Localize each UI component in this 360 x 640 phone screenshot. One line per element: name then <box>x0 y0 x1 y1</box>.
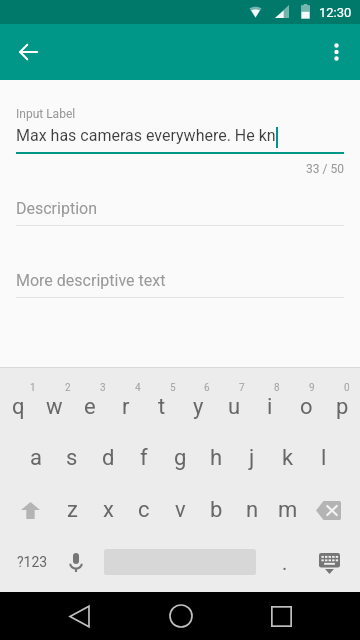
staticText: w <box>46 394 63 420</box>
staticText: 2 <box>65 382 71 394</box>
button[interactable]: o <box>288 385 324 429</box>
button[interactable]: y <box>180 385 216 429</box>
staticText: Description <box>16 199 97 218</box>
button[interactable]: s <box>54 436 90 480</box>
button[interactable]: Back <box>55 592 103 640</box>
button[interactable]: n <box>234 488 270 532</box>
button[interactable]: Hide keyboard <box>309 543 349 583</box>
staticText: 9 <box>309 382 315 394</box>
button[interactable]: x <box>90 488 126 532</box>
staticText: b <box>210 497 223 523</box>
staticText: d <box>102 445 115 471</box>
staticText: 6 <box>204 382 210 394</box>
staticText: l <box>321 445 327 471</box>
staticText: 4 <box>135 382 141 394</box>
staticText: t <box>158 394 166 420</box>
staticText: o <box>300 394 313 420</box>
staticText: m <box>278 497 298 523</box>
button[interactable]: p <box>324 385 360 429</box>
button[interactable]: Navigate up <box>4 28 52 76</box>
staticText: r <box>122 394 130 420</box>
staticText: 0 <box>344 382 350 394</box>
staticText: 12:30 <box>319 5 352 20</box>
button[interactable]: d <box>90 436 126 480</box>
staticText: v <box>175 497 186 523</box>
staticText: z <box>67 497 78 523</box>
button[interactable]: a <box>18 436 54 480</box>
button[interactable]: h <box>198 436 234 480</box>
staticText: q <box>12 394 25 420</box>
staticText: a <box>30 445 42 471</box>
staticText: 8 <box>274 382 280 394</box>
button[interactable]: i <box>252 385 288 429</box>
staticText: e <box>84 394 96 420</box>
staticText: Input Label <box>16 107 76 121</box>
staticText: x <box>103 497 114 523</box>
button[interactable]: k <box>270 436 306 480</box>
staticText: 5 <box>170 382 176 394</box>
button[interactable]: e <box>72 385 108 429</box>
button[interactable]: l <box>306 436 342 480</box>
staticText: p <box>336 394 349 420</box>
staticText: g <box>174 445 187 471</box>
button[interactable]: Voice input <box>58 542 94 582</box>
button[interactable]: Home <box>157 592 205 640</box>
button[interactable]: ?123 <box>8 542 56 582</box>
staticText: 33 / 50 <box>0 162 344 176</box>
button[interactable]: c <box>126 488 162 532</box>
staticText: 7 <box>239 382 245 394</box>
button[interactable]: m <box>270 488 306 532</box>
button[interactable]: Shift <box>7 488 53 532</box>
staticText: n <box>246 497 259 523</box>
staticText: k <box>282 445 294 471</box>
button[interactable]: q <box>0 385 36 429</box>
button[interactable]: More options <box>312 28 360 76</box>
button[interactable]: t <box>144 385 180 429</box>
staticText: c <box>138 497 150 523</box>
staticText: i <box>267 394 273 420</box>
button[interactable]: g <box>162 436 198 480</box>
button[interactable]: b <box>198 488 234 532</box>
staticText: y <box>193 394 204 420</box>
staticText: ?123 <box>17 554 48 570</box>
button[interactable]: . <box>268 542 302 582</box>
staticText: Max has cameras everywhere. He kn <box>16 126 276 145</box>
button[interactable]: v <box>162 488 198 532</box>
staticText: u <box>228 394 241 420</box>
button[interactable]: z <box>54 488 90 532</box>
button[interactable]: Backspace <box>305 488 351 532</box>
staticText: 3 <box>100 382 106 394</box>
staticText: j <box>249 445 255 471</box>
staticText: h <box>210 445 223 471</box>
button[interactable]: f <box>126 436 162 480</box>
button[interactable]: u <box>216 385 252 429</box>
button[interactable]: r <box>108 385 144 429</box>
staticText: 1 <box>30 382 36 394</box>
button[interactable]: j <box>234 436 270 480</box>
staticText: More descriptive text <box>16 271 166 290</box>
staticText: s <box>66 445 78 471</box>
staticText: . <box>282 551 288 574</box>
staticText: f <box>140 445 148 471</box>
button[interactable]: w <box>36 385 72 429</box>
button[interactable]: Recent apps <box>257 592 305 640</box>
